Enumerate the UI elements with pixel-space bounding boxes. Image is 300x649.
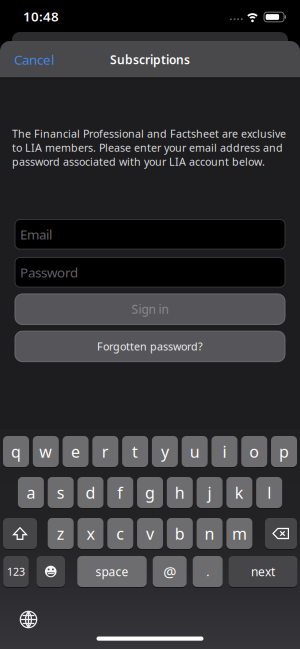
button[interactable]: @	[153, 556, 187, 587]
button[interactable]: n	[197, 518, 223, 549]
button[interactable]: m	[226, 518, 252, 549]
button[interactable]: j	[197, 477, 223, 508]
staticText: The Financial Professional and Factsheet…	[12, 126, 286, 141]
button[interactable]	[265, 518, 297, 549]
staticText: i	[222, 441, 226, 462]
button[interactable]: w	[33, 436, 59, 467]
staticText: z	[57, 523, 65, 544]
staticText: l	[267, 482, 271, 503]
staticText: space	[95, 563, 128, 579]
staticText: Sign in	[131, 301, 168, 317]
staticText: to LIA members. Please enter your email …	[12, 140, 283, 155]
staticText: q	[11, 441, 21, 462]
staticText: next	[251, 563, 275, 579]
button[interactable]: a	[18, 477, 44, 508]
button[interactable]: r	[92, 436, 118, 467]
button[interactable]: l	[256, 477, 282, 508]
button[interactable]: c	[107, 518, 133, 549]
staticText: x	[86, 523, 94, 544]
button[interactable]: g	[137, 477, 163, 508]
staticText: a	[26, 482, 35, 503]
button[interactable]: u	[182, 436, 208, 467]
button[interactable]	[3, 518, 37, 549]
button[interactable]: Email	[15, 219, 285, 249]
staticText: n	[205, 523, 215, 544]
staticText: j	[208, 482, 212, 503]
button[interactable]: s	[48, 477, 74, 508]
staticText: @	[163, 562, 176, 581]
staticText: p	[279, 441, 289, 462]
button[interactable]: i	[211, 436, 237, 467]
staticText: g	[145, 482, 155, 503]
staticText: m	[232, 523, 247, 544]
button[interactable]: b	[167, 518, 193, 549]
staticText: y	[161, 441, 169, 462]
button[interactable]	[19, 610, 38, 629]
button[interactable]: x	[77, 518, 103, 549]
staticText: Password	[20, 263, 78, 281]
staticText: f	[117, 482, 123, 503]
button[interactable]: Forgotten password?	[15, 331, 285, 362]
button[interactable]: h	[167, 477, 193, 508]
staticText: b	[175, 523, 185, 544]
button[interactable]: v	[137, 518, 163, 549]
button[interactable]: q	[3, 436, 29, 467]
staticText: h	[175, 482, 185, 503]
button[interactable]: o	[241, 436, 267, 467]
staticText: o	[249, 441, 259, 462]
staticText: v	[146, 523, 154, 544]
button[interactable]: e	[63, 436, 89, 467]
button[interactable]: k	[226, 477, 252, 508]
staticText: password associated with your LIA accoun…	[12, 154, 265, 169]
staticText: e	[71, 441, 80, 462]
button[interactable]: f	[107, 477, 133, 508]
button[interactable]: t	[122, 436, 148, 467]
staticText: 123	[7, 564, 25, 579]
button[interactable]: Sign in	[15, 294, 285, 324]
staticText: k	[235, 482, 244, 503]
staticText: w	[39, 441, 52, 462]
staticText: Email	[20, 225, 52, 243]
staticText: u	[190, 441, 200, 462]
staticText: Subscriptions	[110, 51, 190, 67]
button[interactable]: d	[77, 477, 103, 508]
button[interactable]: 123	[3, 556, 29, 587]
staticText: d	[85, 482, 95, 503]
button[interactable]: space	[77, 556, 147, 587]
staticText: .	[206, 563, 209, 579]
button[interactable]: .	[193, 556, 223, 587]
button[interactable]: z	[48, 518, 74, 549]
staticText: 10:48	[23, 7, 59, 25]
button[interactable]: Password	[15, 257, 285, 287]
button[interactable]: p	[271, 436, 297, 467]
button[interactable]: y	[152, 436, 178, 467]
staticText: r	[102, 441, 109, 462]
staticText: Forgotten password?	[97, 339, 203, 353]
staticText: c	[116, 523, 124, 544]
staticText: s	[57, 482, 65, 503]
button[interactable]: next	[228, 556, 297, 587]
button[interactable]	[36, 556, 65, 587]
staticText: t	[132, 441, 138, 462]
button[interactable]: Cancel	[14, 49, 74, 69]
staticText: Cancel	[14, 51, 54, 68]
